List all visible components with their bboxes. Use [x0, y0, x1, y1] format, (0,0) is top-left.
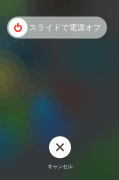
staticText: スライドで電源オフ: [29, 23, 101, 32]
button[interactable]: キャンセル: [47, 136, 72, 170]
button[interactable]: スライドで電源オフ: [7, 16, 107, 38]
staticText: キャンセル: [47, 163, 72, 170]
